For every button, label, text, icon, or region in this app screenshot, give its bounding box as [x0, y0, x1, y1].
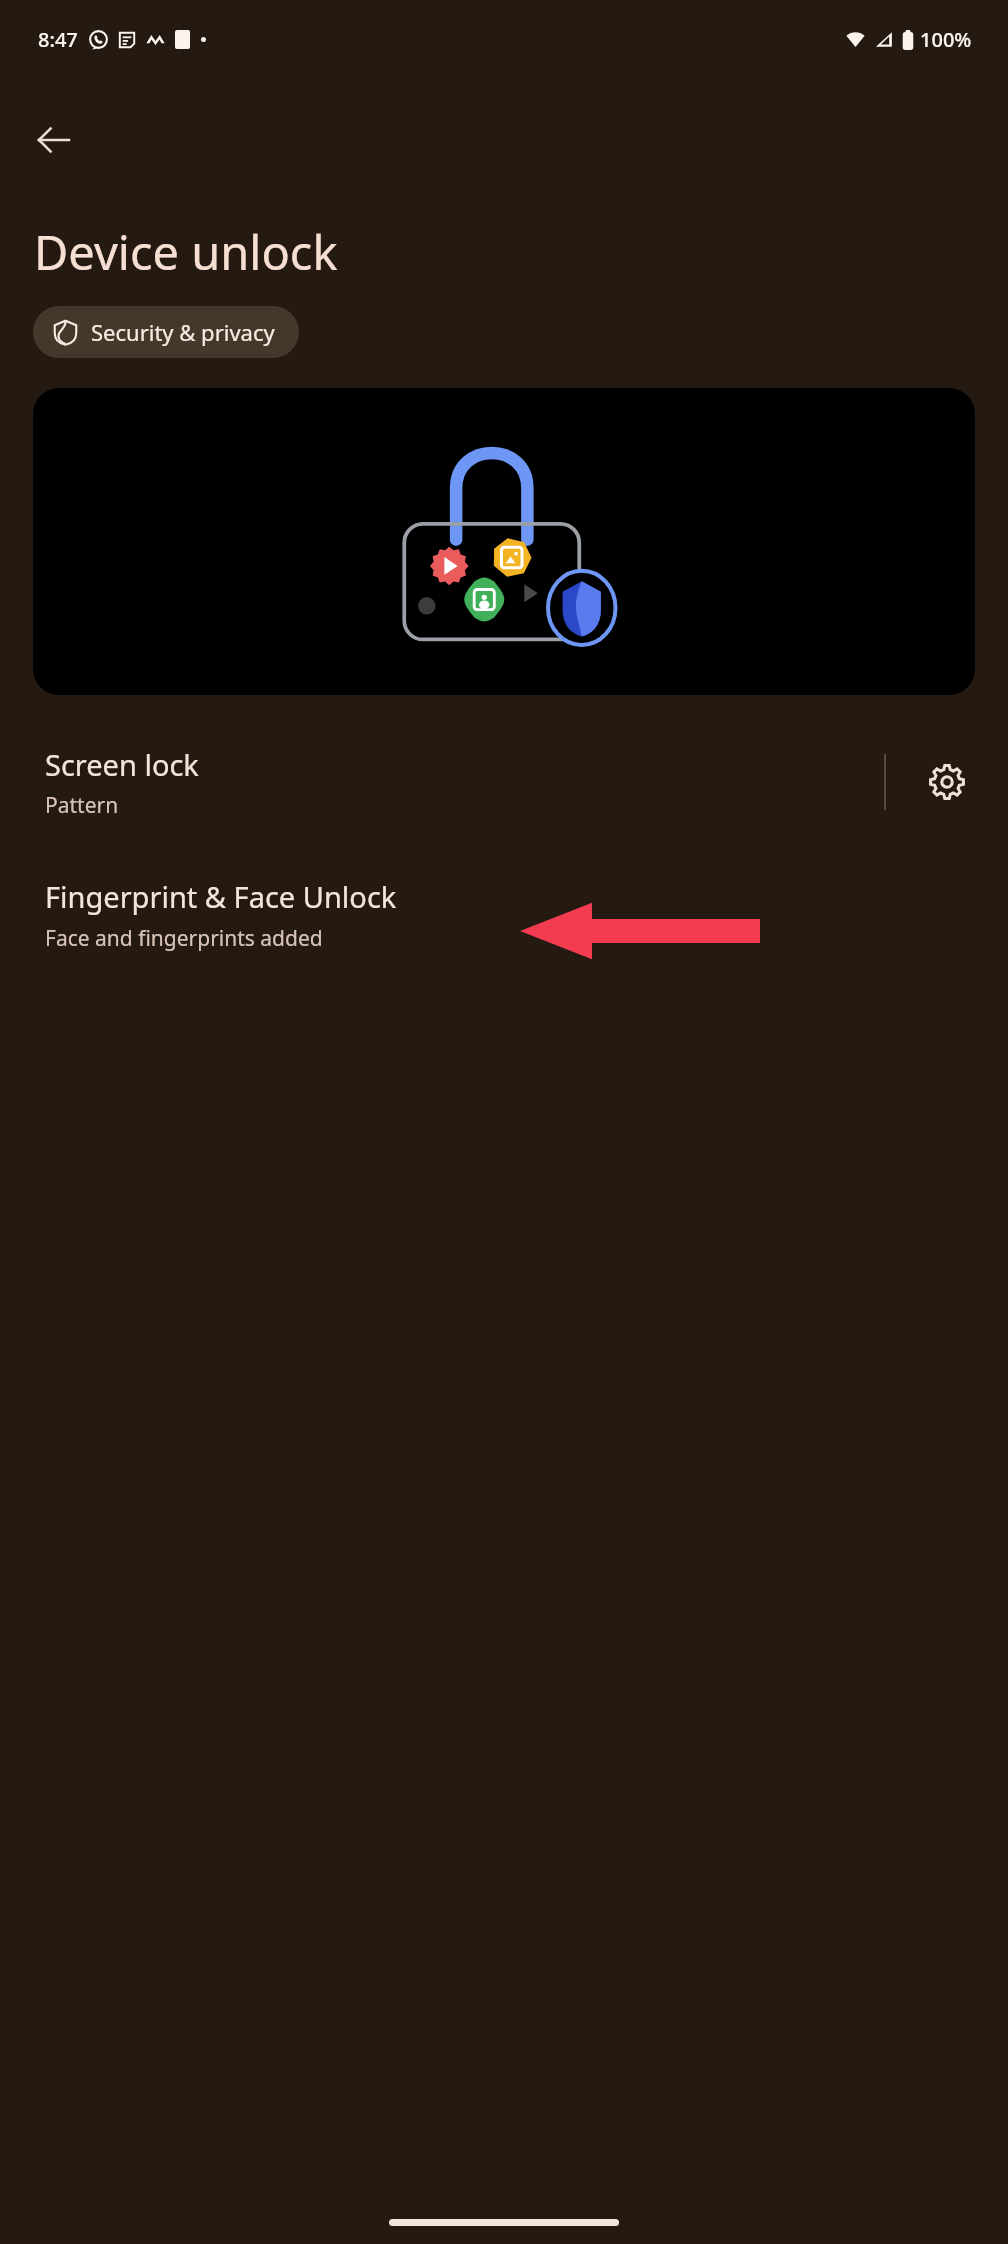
button[interactable]: Screen lock settings — [886, 727, 1008, 837]
staticText: Device unlock — [34, 220, 338, 284]
button[interactable]: Back — [22, 108, 86, 172]
staticText: 100% — [920, 26, 972, 53]
staticText: Face and fingerprints added — [45, 924, 323, 953]
staticText: 8:47 — [38, 26, 78, 53]
button[interactable]: Screen lock — [0, 727, 884, 837]
button[interactable]: Device unlock illustration — [33, 388, 975, 695]
staticText: Pattern — [45, 791, 119, 820]
button[interactable]: Fingerprint & Face Unlock — [0, 863, 1008, 971]
staticText: Security & privacy — [91, 317, 275, 347]
button[interactable]: Security & privacy — [33, 306, 299, 358]
staticText: Screen lock — [45, 745, 199, 784]
staticText: Fingerprint & Face Unlock — [45, 877, 397, 916]
